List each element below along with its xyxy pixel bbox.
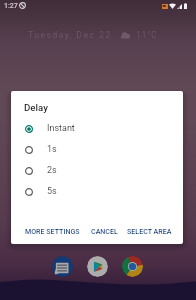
button[interactable]: Chrome bbox=[122, 256, 143, 277]
button[interactable]: 5s bbox=[11, 181, 183, 202]
staticText: Tuesday, Dec 22 bbox=[28, 30, 112, 40]
staticText: 1:27 bbox=[4, 2, 18, 10]
button[interactable]: 1s bbox=[11, 139, 183, 160]
button[interactable]: Play Store bbox=[87, 256, 108, 277]
staticText: SELECT AREA bbox=[127, 227, 172, 235]
button[interactable]: Messages bbox=[52, 256, 73, 277]
button[interactable]: 2s bbox=[11, 160, 183, 181]
button[interactable]: Instant bbox=[11, 118, 183, 139]
button[interactable]: CANCEL bbox=[89, 225, 120, 237]
button[interactable]: SELECT AREA bbox=[125, 225, 174, 237]
button[interactable]: MORE SETTINGS bbox=[23, 225, 82, 237]
staticText: Delay bbox=[24, 102, 48, 113]
staticText: 11°C bbox=[136, 30, 158, 40]
staticText: CANCEL bbox=[91, 227, 118, 235]
staticText: MORE SETTINGS bbox=[25, 227, 80, 235]
staticText: Instant bbox=[47, 123, 75, 134]
staticText: 1s bbox=[47, 144, 57, 155]
staticText: 2s bbox=[47, 165, 57, 176]
staticText: 5s bbox=[47, 186, 57, 197]
